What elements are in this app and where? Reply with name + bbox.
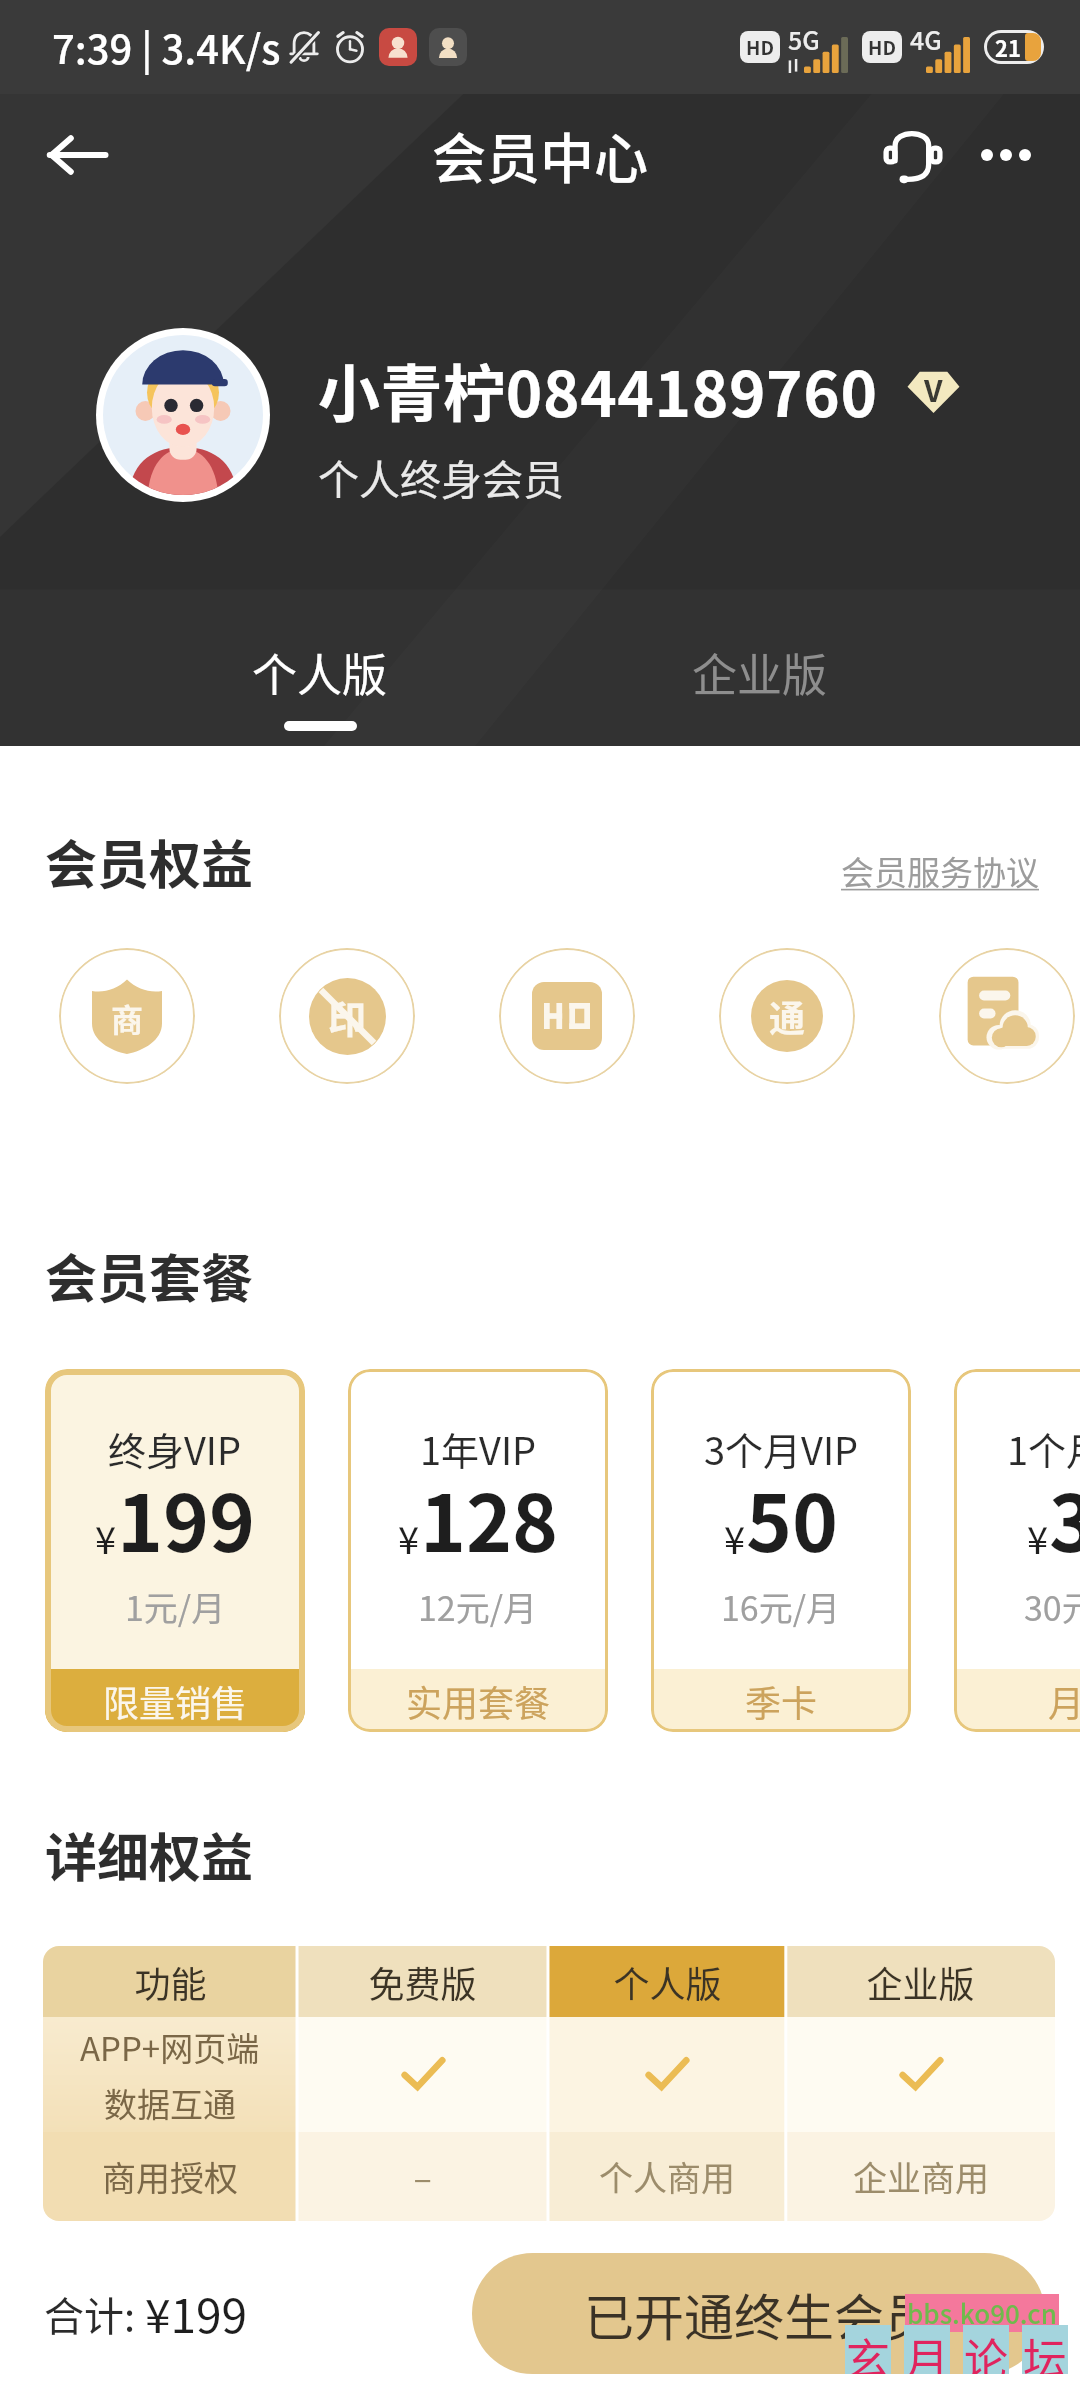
staticText: 论 [964,2325,1008,2374]
button[interactable]: 无水印 [279,948,415,1084]
staticText: 实用套餐 [406,1675,551,1727]
staticText: 5G [788,21,820,57]
staticText: ¥ [398,1510,420,1565]
button[interactable]: 3个月VIP [651,1369,911,1732]
button[interactable]: Profile avatar [103,335,263,495]
staticText: 月卡 [1048,1675,1080,1727]
staticText: 30元/月 [1024,1582,1080,1631]
staticText: 坛 [1023,2325,1067,2374]
staticText: ¥ [724,1510,746,1565]
button[interactable]: 1个月VIP [954,1369,1080,1732]
button[interactable]: 已开通终生会员 [472,2253,1045,2374]
button[interactable]: 企业版 [540,612,980,746]
button[interactable]: 会员服务协议 [837,843,1043,899]
staticText: 季卡 [745,1675,818,1727]
staticText: 企业商用 [853,2152,989,2201]
staticText: 功能 [134,1956,207,2008]
staticText: 30 [1049,1462,1080,1575]
staticText: 通 [769,990,806,1042]
button[interactable]: Customer service [856,105,956,205]
staticText: 个人版 [613,1956,722,2008]
staticText: 小青柠0844189760 [318,345,878,435]
staticText: 12元/月 [418,1582,538,1631]
staticText: 个人版 [252,640,388,705]
staticText: 印 [328,989,367,1044]
staticText: ¥ [95,1510,117,1565]
button[interactable]: 1年VIP [348,1369,608,1732]
staticText: HD [746,33,774,61]
staticText: 128 [420,1462,559,1575]
staticText: 月 [905,2325,949,2374]
staticText: 3个月VIP [704,1421,859,1476]
staticText: 已开通终生会员 [584,2278,934,2350]
staticText: ¥ [1027,1510,1049,1565]
button[interactable]: 个人版 [100,612,540,746]
staticText: 企业版 [866,1956,975,2008]
staticText: 详细权益 [45,1817,254,1892]
staticText: 会员权益 [45,824,254,899]
staticText: 199 [117,1462,256,1575]
button[interactable]: 商用授权 [59,948,195,1084]
staticText: 会员服务协议 [841,847,1039,895]
staticText: V [924,367,943,408]
staticText: APP+网页端 [80,2023,260,2071]
staticText: 会员套餐 [45,1238,254,1313]
staticText: bbs.ko90.cn [907,2294,1057,2332]
staticText: 限量销售 [103,1675,248,1727]
staticText: 1元/月 [125,1582,226,1631]
staticText: 商 [111,995,144,1041]
staticText: 21 [995,31,1021,63]
button[interactable]: Back [22,100,132,210]
button[interactable]: 终身VIP [45,1369,305,1732]
staticText: – [413,2152,432,2201]
staticText: 7:39 | 3.4K/s [52,18,281,76]
staticText: 个人商用 [599,2152,735,2201]
staticText: 16元/月 [721,1582,841,1631]
staticText: 1年VIP [420,1421,537,1476]
staticText: 会员中心 [432,116,648,194]
staticText: 4G [910,21,942,57]
staticText: 数据互通 [104,2079,236,2127]
staticText: 个人终身会员 [318,447,564,506]
staticText: 终身VIP [108,1421,242,1476]
staticText: 合计: [44,2285,145,2343]
staticText: 1个月VIP [1007,1421,1080,1476]
staticText: 企业版 [692,640,828,705]
staticText: 玄 [846,2325,890,2374]
staticText: ¥199 [145,2280,248,2347]
staticText: 商用授权 [102,2152,238,2201]
button[interactable]: More options [956,105,1056,205]
button[interactable]: 高清导出 [499,948,635,1084]
staticText: 免费版 [368,1956,477,2008]
staticText: HD [868,33,896,61]
staticText: 50 [746,1462,839,1575]
button[interactable]: 数据互通 [719,948,855,1084]
button[interactable]: 云端存储 [939,948,1075,1084]
